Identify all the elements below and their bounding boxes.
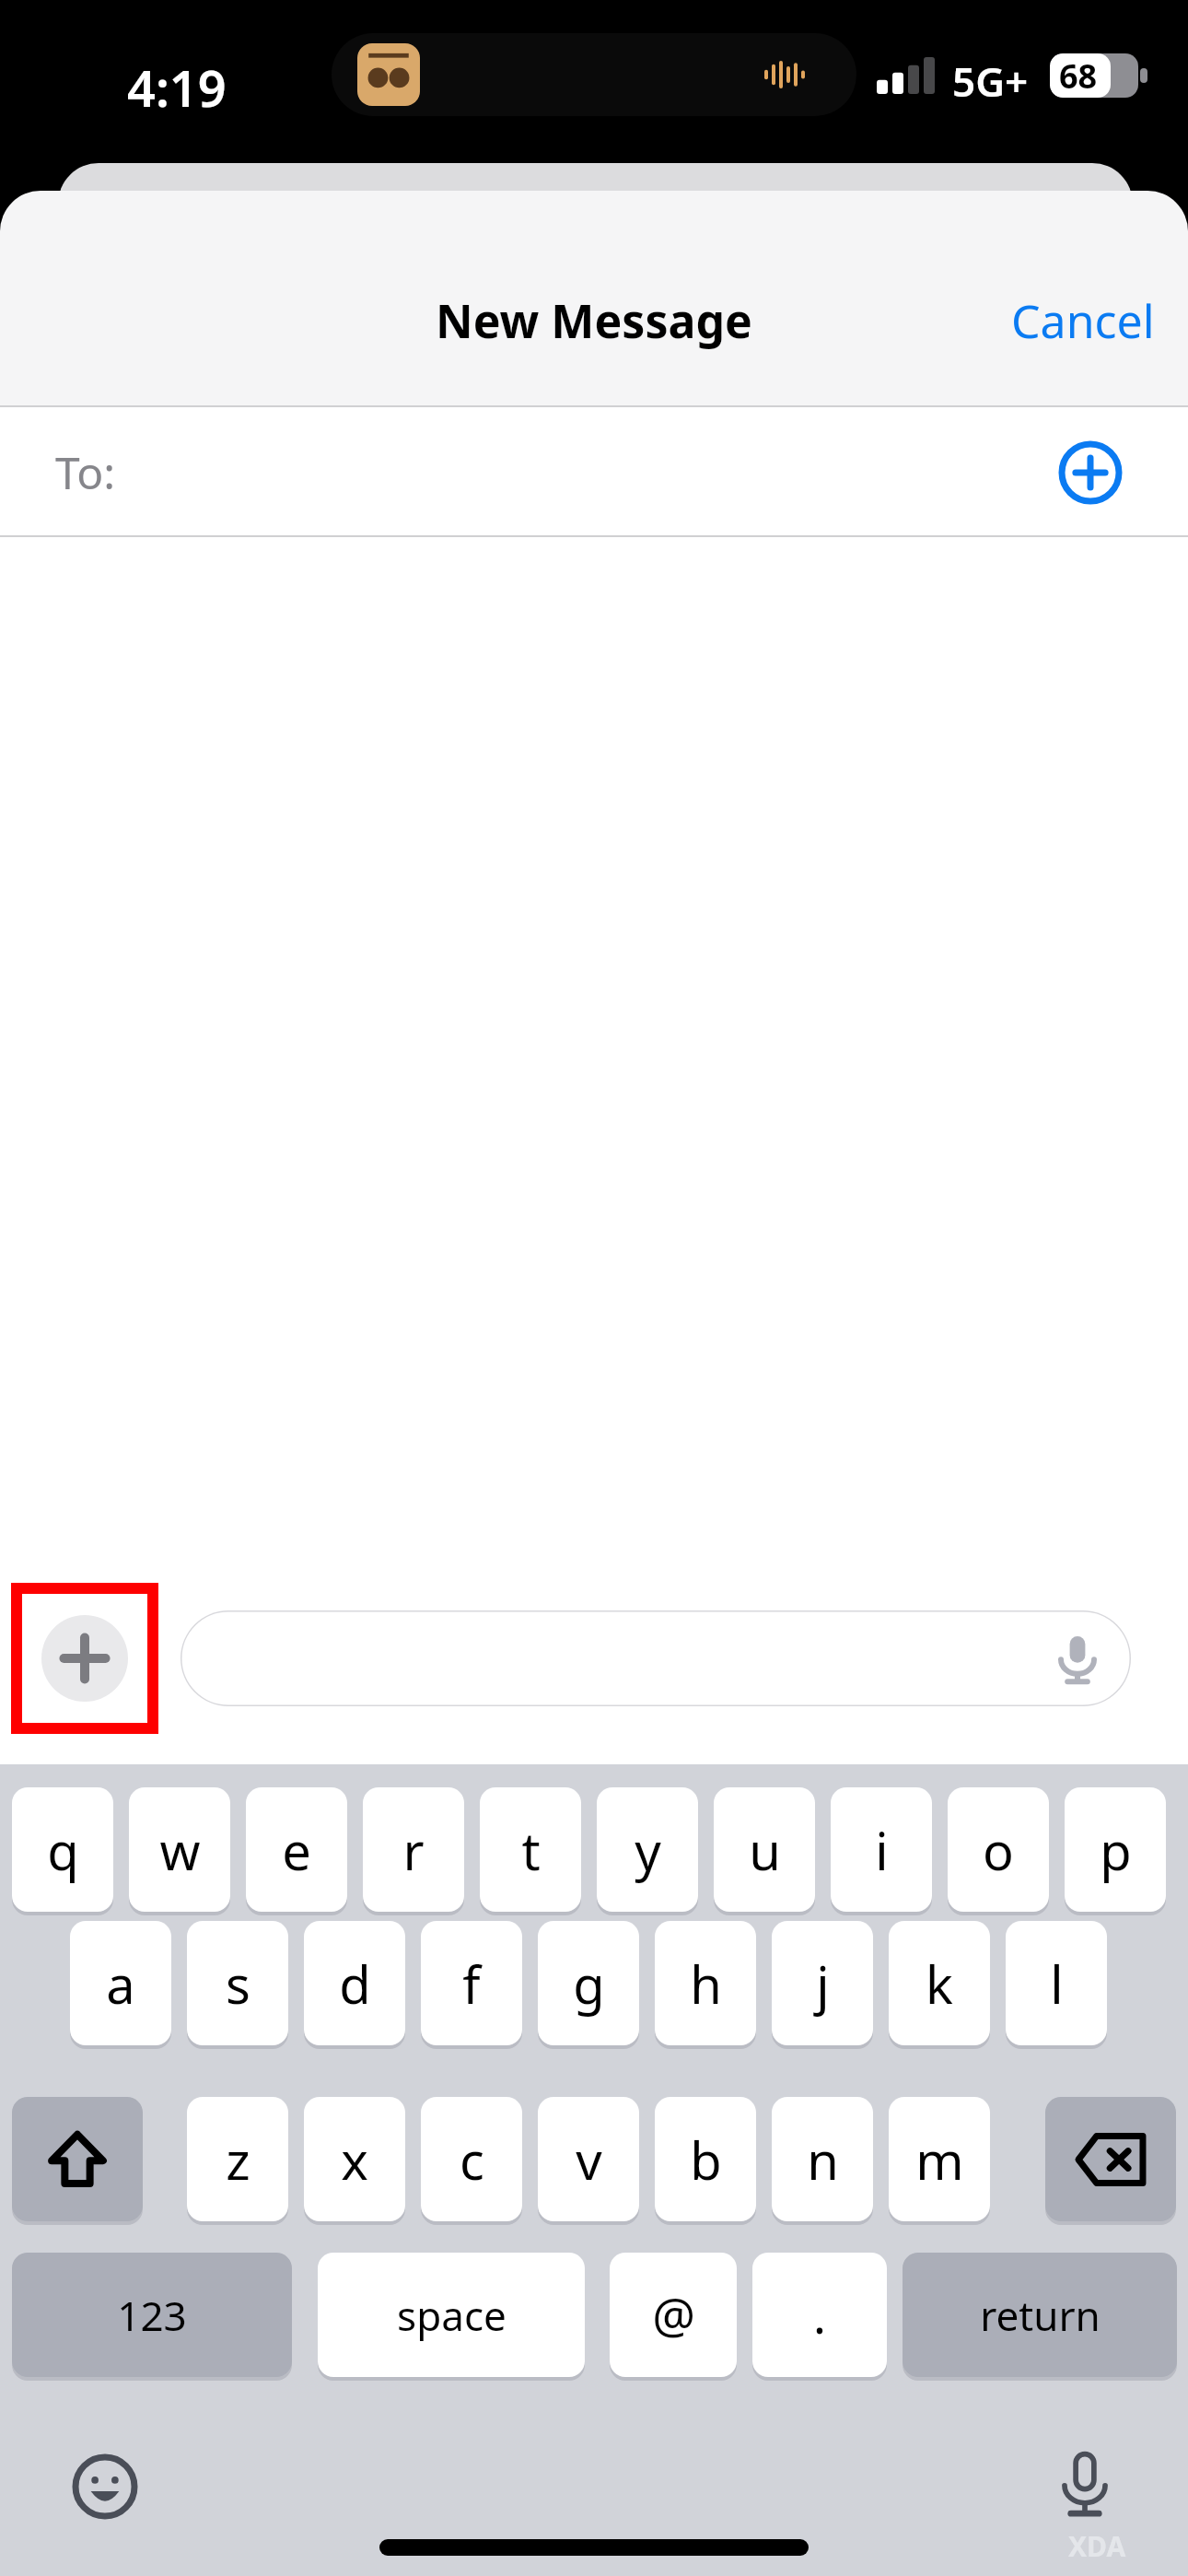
staticText: u [749,1815,781,1885]
staticText: e [282,1815,311,1885]
staticText: h [690,1949,722,2019]
button[interactable]: s [187,1921,288,2045]
staticText: 5G+ [952,53,1029,109]
button[interactable] [1045,2097,1176,2221]
button[interactable]: Add attachment [17,1588,153,1728]
staticText: c [460,2125,484,2195]
staticText: i [875,1815,889,1885]
staticText: 68 [1059,53,1098,98]
button[interactable]: Emoji [72,2453,138,2520]
button[interactable]: m [889,2097,990,2221]
button[interactable]: Add contact [1057,439,1124,506]
staticText: o [983,1815,1014,1885]
staticText: k [926,1949,953,2019]
button[interactable]: r [363,1787,464,1912]
button[interactable]: Dictate [1050,1631,1105,1686]
staticText: New Message [436,289,752,352]
button[interactable]: i [831,1787,932,1912]
staticText: @ [652,2282,695,2348]
staticText: r [402,1815,425,1885]
button[interactable]: e [246,1787,347,1912]
staticText: t [521,1815,541,1885]
button[interactable]: b [655,2097,756,2221]
button[interactable]: j [772,1921,873,2045]
button[interactable]: Dictation [1050,2450,1120,2520]
button[interactable]: v [538,2097,639,2221]
staticText: f [462,1949,481,2019]
button[interactable]: Cancel [978,276,1188,365]
staticText: j [816,1949,830,2019]
button[interactable]: q [12,1787,113,1912]
button[interactable]: y [597,1787,698,1912]
button[interactable]: @ [610,2253,737,2377]
button[interactable]: To: [0,407,1188,537]
button[interactable]: c [421,2097,522,2221]
button[interactable]: x [304,2097,405,2221]
staticText: Cancel [1011,289,1155,352]
button[interactable]: n [772,2097,873,2221]
staticText: y [635,1815,661,1885]
staticText: z [226,2125,250,2195]
staticText: XDA [1068,2527,1126,2565]
button[interactable]: u [714,1787,815,1912]
staticText: return [980,2288,1101,2343]
button[interactable]: Dictate [181,1610,1131,1706]
staticText: n [807,2125,839,2195]
staticText: 123 [117,2288,187,2343]
staticText: b [690,2125,722,2195]
button[interactable]: h [655,1921,756,2045]
button[interactable]: l [1006,1921,1107,2045]
staticText: d [339,1949,371,2019]
staticText: a [106,1949,135,2019]
button[interactable]: f [421,1921,522,2045]
button[interactable]: 123 [12,2253,292,2377]
staticText: 4:19 [127,53,227,122]
staticText: x [341,2125,368,2195]
button[interactable]: space [318,2253,585,2377]
staticText: space [397,2288,507,2343]
staticText: To: [55,442,116,502]
staticText: g [573,1949,605,2019]
button[interactable]: g [538,1921,639,2045]
button[interactable]: d [304,1921,405,2045]
staticText: l [1050,1949,1064,2019]
button[interactable]: . [752,2253,887,2377]
button[interactable]: t [480,1787,581,1912]
staticText: q [47,1815,79,1885]
button[interactable]: return [903,2253,1177,2377]
button[interactable]: p [1065,1787,1166,1912]
button[interactable] [12,2097,143,2221]
staticText: v [576,2125,602,2195]
staticText: w [159,1815,201,1885]
button[interactable]: a [70,1921,171,2045]
button[interactable]: o [948,1787,1049,1912]
button[interactable]: k [889,1921,990,2045]
staticText: m [915,2125,964,2195]
staticText: . [813,2282,826,2348]
staticText: p [1100,1815,1132,1885]
button[interactable]: z [187,2097,288,2221]
button[interactable]: w [129,1787,230,1912]
staticText: s [226,1949,250,2019]
